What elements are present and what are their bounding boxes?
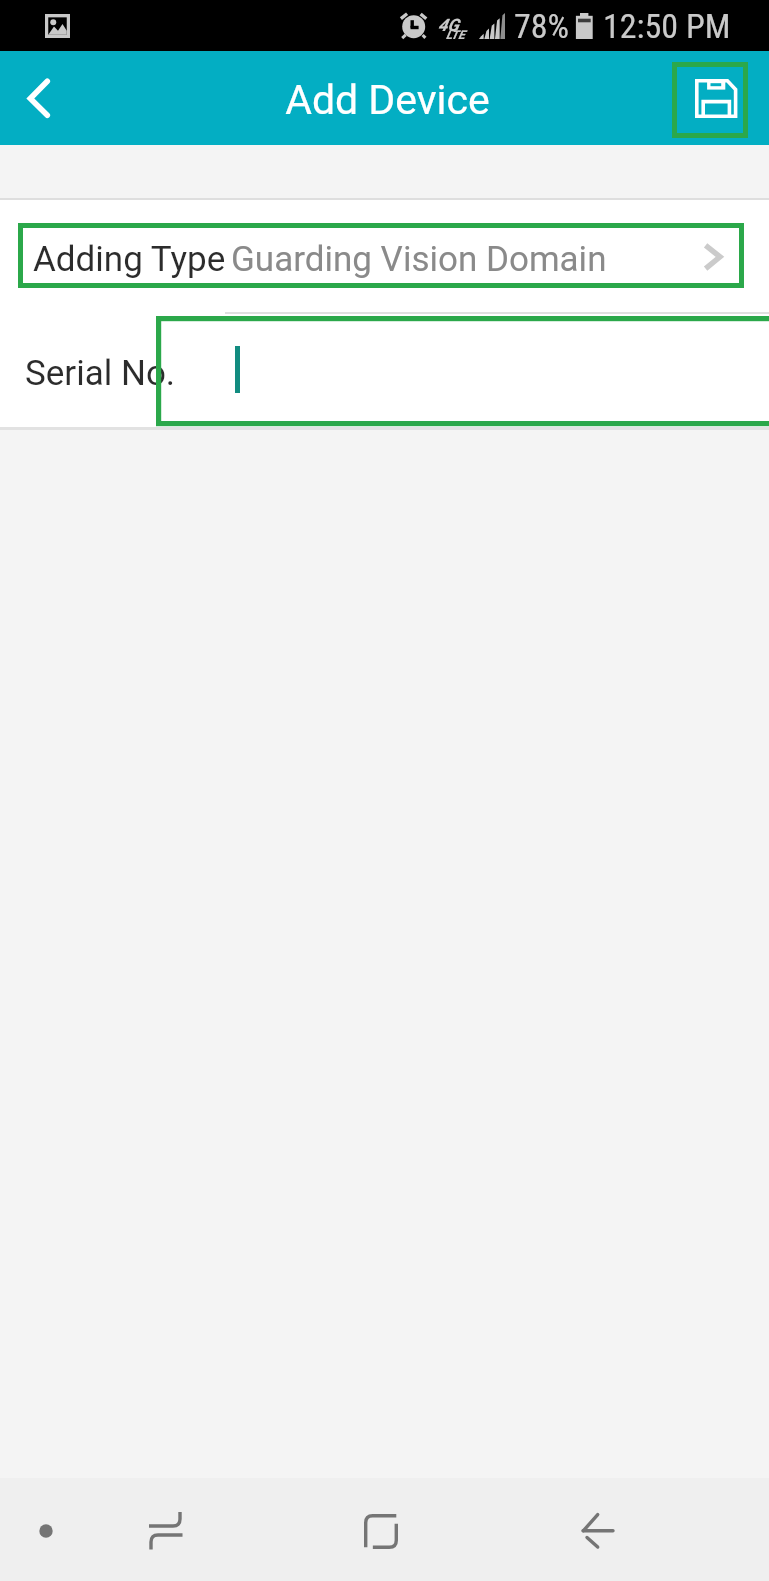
- button[interactable]: Menu: [0, 1478, 92, 1581]
- button[interactable]: Save: [672, 62, 748, 138]
- button[interactable]: Adding Type: [0, 200, 769, 312]
- button[interactable]: Serial No.: [0, 314, 769, 427]
- staticText: LTE: [446, 28, 465, 42]
- staticText: Add Device: [285, 76, 490, 124]
- staticText: 78%: [514, 6, 570, 46]
- staticText: Guarding Vision Domain: [231, 239, 607, 280]
- staticText: Adding Type: [33, 239, 226, 280]
- staticText: 12:50 PM: [603, 6, 731, 46]
- button[interactable]: Back: [0, 51, 76, 145]
- staticText: Serial No.: [25, 353, 176, 394]
- button[interactable]: Multi window: [112, 1478, 222, 1581]
- button[interactable]: Back: [542, 1478, 652, 1581]
- button[interactable]: Recent apps: [326, 1478, 436, 1581]
- staticText: 4G: [438, 15, 459, 35]
